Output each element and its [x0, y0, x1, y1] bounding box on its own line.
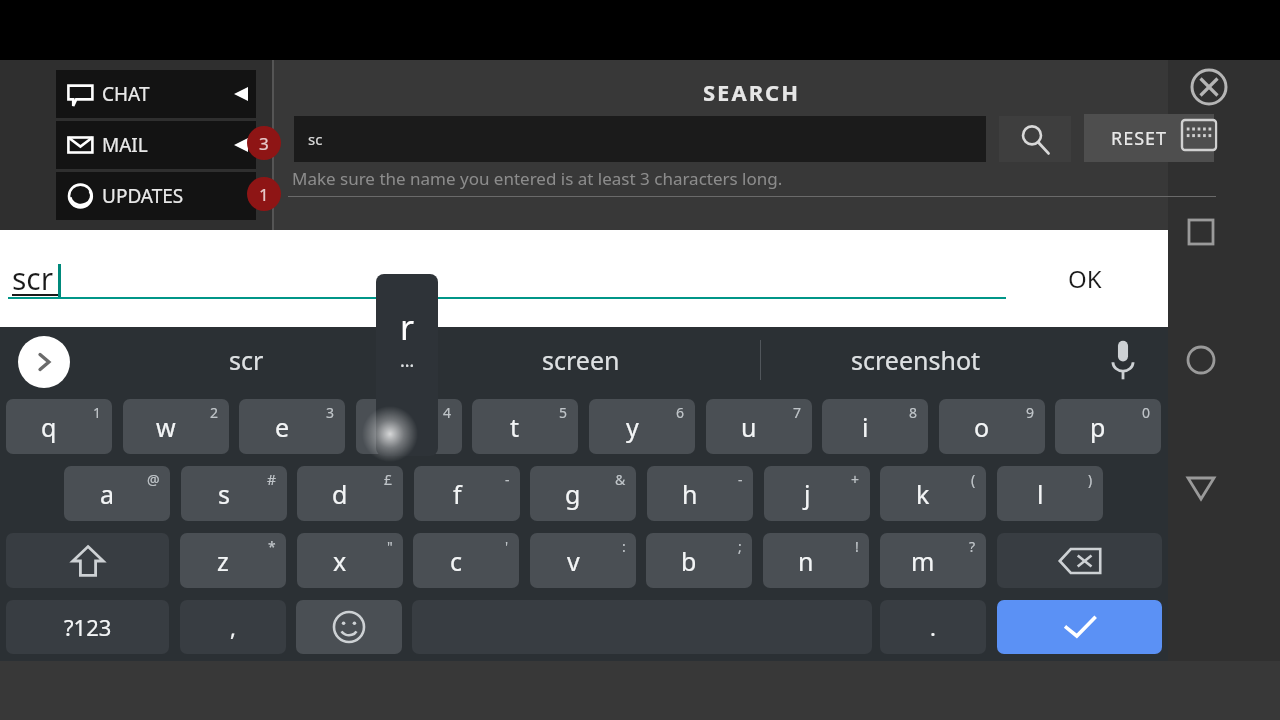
button[interactable]: e — [239, 399, 345, 454]
button[interactable]: y — [589, 399, 695, 454]
button[interactable]: Search — [999, 116, 1071, 162]
staticText: q — [41, 410, 57, 444]
button[interactable]: k — [880, 466, 986, 521]
staticText: . — [930, 612, 936, 642]
button[interactable]: a — [64, 466, 170, 521]
staticText: * — [268, 537, 276, 556]
button[interactable]: Emoji — [296, 600, 402, 654]
staticText: z — [217, 544, 229, 578]
button[interactable]: i — [822, 399, 928, 454]
staticText: & — [615, 470, 626, 489]
button[interactable]: Enter — [997, 600, 1162, 654]
button[interactable]: Shift — [6, 533, 169, 588]
staticText: ) — [1088, 470, 1093, 489]
button[interactable]: n — [763, 533, 869, 588]
button[interactable]: OK — [1030, 252, 1140, 304]
staticText: r — [394, 410, 405, 444]
button[interactable]: MAIL — [56, 121, 256, 169]
staticText: @ — [147, 470, 160, 489]
staticText: t — [510, 410, 520, 444]
button[interactable]: s — [181, 466, 287, 521]
staticText: ?123 — [64, 612, 112, 642]
button[interactable]: l — [997, 466, 1103, 521]
staticText: c — [450, 544, 463, 578]
other: Keyboard — [1182, 120, 1216, 150]
staticText: ' — [505, 537, 509, 556]
staticText: sc — [308, 129, 323, 149]
staticText: scr — [229, 343, 264, 377]
button[interactable]: Close — [1190, 68, 1228, 106]
button[interactable]: c — [413, 533, 519, 588]
button[interactable]: screenshot — [800, 336, 1032, 384]
staticText: h — [682, 477, 698, 511]
staticText: : — [622, 537, 626, 556]
staticText: + — [851, 470, 860, 489]
button[interactable]: v — [530, 533, 636, 588]
button[interactable]: Backspace — [997, 533, 1162, 588]
button[interactable]: Home — [1186, 345, 1216, 375]
button[interactable]: b — [646, 533, 752, 588]
button[interactable]: w — [123, 399, 229, 454]
button[interactable]: x — [297, 533, 403, 588]
staticText: CHAT — [102, 81, 150, 107]
staticText: screen — [542, 343, 620, 377]
staticText: j — [804, 477, 811, 511]
staticText: … — [400, 348, 415, 373]
staticText: 1 — [259, 183, 269, 206]
staticText: r — [400, 304, 415, 350]
staticText: 7 — [793, 403, 802, 422]
staticText: scr — [12, 258, 54, 299]
staticText: d — [332, 477, 348, 511]
button[interactable]: d — [297, 466, 403, 521]
staticText: 8 — [909, 403, 918, 422]
staticText: y — [626, 410, 639, 444]
button[interactable]: r — [356, 399, 462, 454]
button[interactable]: Recent apps — [1186, 217, 1216, 247]
button[interactable]: o — [939, 399, 1045, 454]
staticText: # — [267, 470, 277, 489]
staticText: 6 — [676, 403, 685, 422]
staticText: s — [218, 477, 230, 511]
staticText: i — [862, 410, 869, 444]
staticText: SEARCH — [703, 77, 801, 107]
staticText: a — [100, 477, 115, 511]
button[interactable]: scr — [130, 336, 362, 384]
button[interactable]: p — [1055, 399, 1161, 454]
staticText: - — [738, 470, 743, 489]
button[interactable]: q — [6, 399, 112, 454]
button[interactable]: , — [180, 600, 286, 654]
staticText: b — [681, 544, 697, 578]
staticText: w — [156, 410, 176, 444]
button[interactable]: Back — [1186, 473, 1216, 503]
button[interactable]: screen — [465, 336, 697, 384]
button[interactable]: f — [414, 466, 520, 521]
staticText: ; — [738, 537, 742, 556]
button[interactable]: z — [180, 533, 286, 588]
button[interactable]: UPDATES — [56, 172, 256, 220]
button[interactable]: u — [706, 399, 812, 454]
button[interactable]: sc — [294, 116, 986, 162]
button[interactable]: t — [472, 399, 578, 454]
staticText: RESET — [1111, 126, 1168, 151]
staticText: f — [453, 477, 462, 511]
button[interactable]: ?123 — [6, 600, 169, 654]
staticText: g — [565, 477, 581, 511]
staticText: n — [798, 544, 814, 578]
staticText: k — [916, 477, 930, 511]
staticText: o — [974, 410, 990, 444]
staticText: screenshot — [851, 343, 981, 377]
staticText: 1 — [93, 403, 102, 422]
button[interactable]: j — [764, 466, 870, 521]
button[interactable]: m — [880, 533, 986, 588]
button[interactable]: CHAT — [56, 70, 256, 118]
button[interactable]: RESET — [1084, 114, 1214, 162]
button[interactable]: . — [880, 600, 986, 654]
staticText: x — [333, 544, 347, 578]
button[interactable]: More suggestions — [18, 336, 70, 388]
button[interactable]: g — [530, 466, 636, 521]
button[interactable]: Voice input — [1105, 337, 1141, 383]
button[interactable]: h — [647, 466, 753, 521]
staticText: £ — [384, 470, 393, 489]
staticText: OK — [1068, 262, 1102, 295]
